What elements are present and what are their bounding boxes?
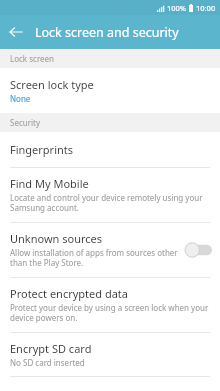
staticText: Screen lock type xyxy=(10,77,94,92)
button[interactable]: Fingerprints xyxy=(0,132,220,168)
staticText: Security xyxy=(10,117,41,128)
staticText: None xyxy=(10,93,31,104)
staticText: Lock screen and security xyxy=(35,24,179,41)
staticText: 100% xyxy=(167,3,187,13)
staticText: Find My Mobile xyxy=(10,176,89,191)
button[interactable]: Navigate up xyxy=(0,16,32,48)
staticText: Encrypt SD card xyxy=(10,341,92,356)
staticText: Locate and control your device remotely … xyxy=(10,192,212,214)
staticText: Fingerprints xyxy=(10,142,74,157)
staticText: Lock screen xyxy=(10,53,55,64)
button[interactable]: Find My Mobile xyxy=(0,168,220,223)
staticText: No SD card inserted xyxy=(10,357,85,368)
button[interactable]: Protect encrypted data xyxy=(0,278,220,333)
staticText: Protect encrypted data xyxy=(10,286,128,301)
button[interactable]: Screen lock type xyxy=(0,68,220,113)
staticText: Allow installation of apps from sources … xyxy=(10,247,178,269)
button[interactable]: Encrypt SD card xyxy=(0,333,220,377)
staticText: 10:00 xyxy=(196,3,216,13)
button[interactable]: Unknown sources switch, off xyxy=(184,242,212,258)
button[interactable]: Unknown sources xyxy=(0,223,220,278)
staticText: Protect your device by using a screen lo… xyxy=(10,302,212,324)
staticText: Unknown sources xyxy=(10,231,103,246)
